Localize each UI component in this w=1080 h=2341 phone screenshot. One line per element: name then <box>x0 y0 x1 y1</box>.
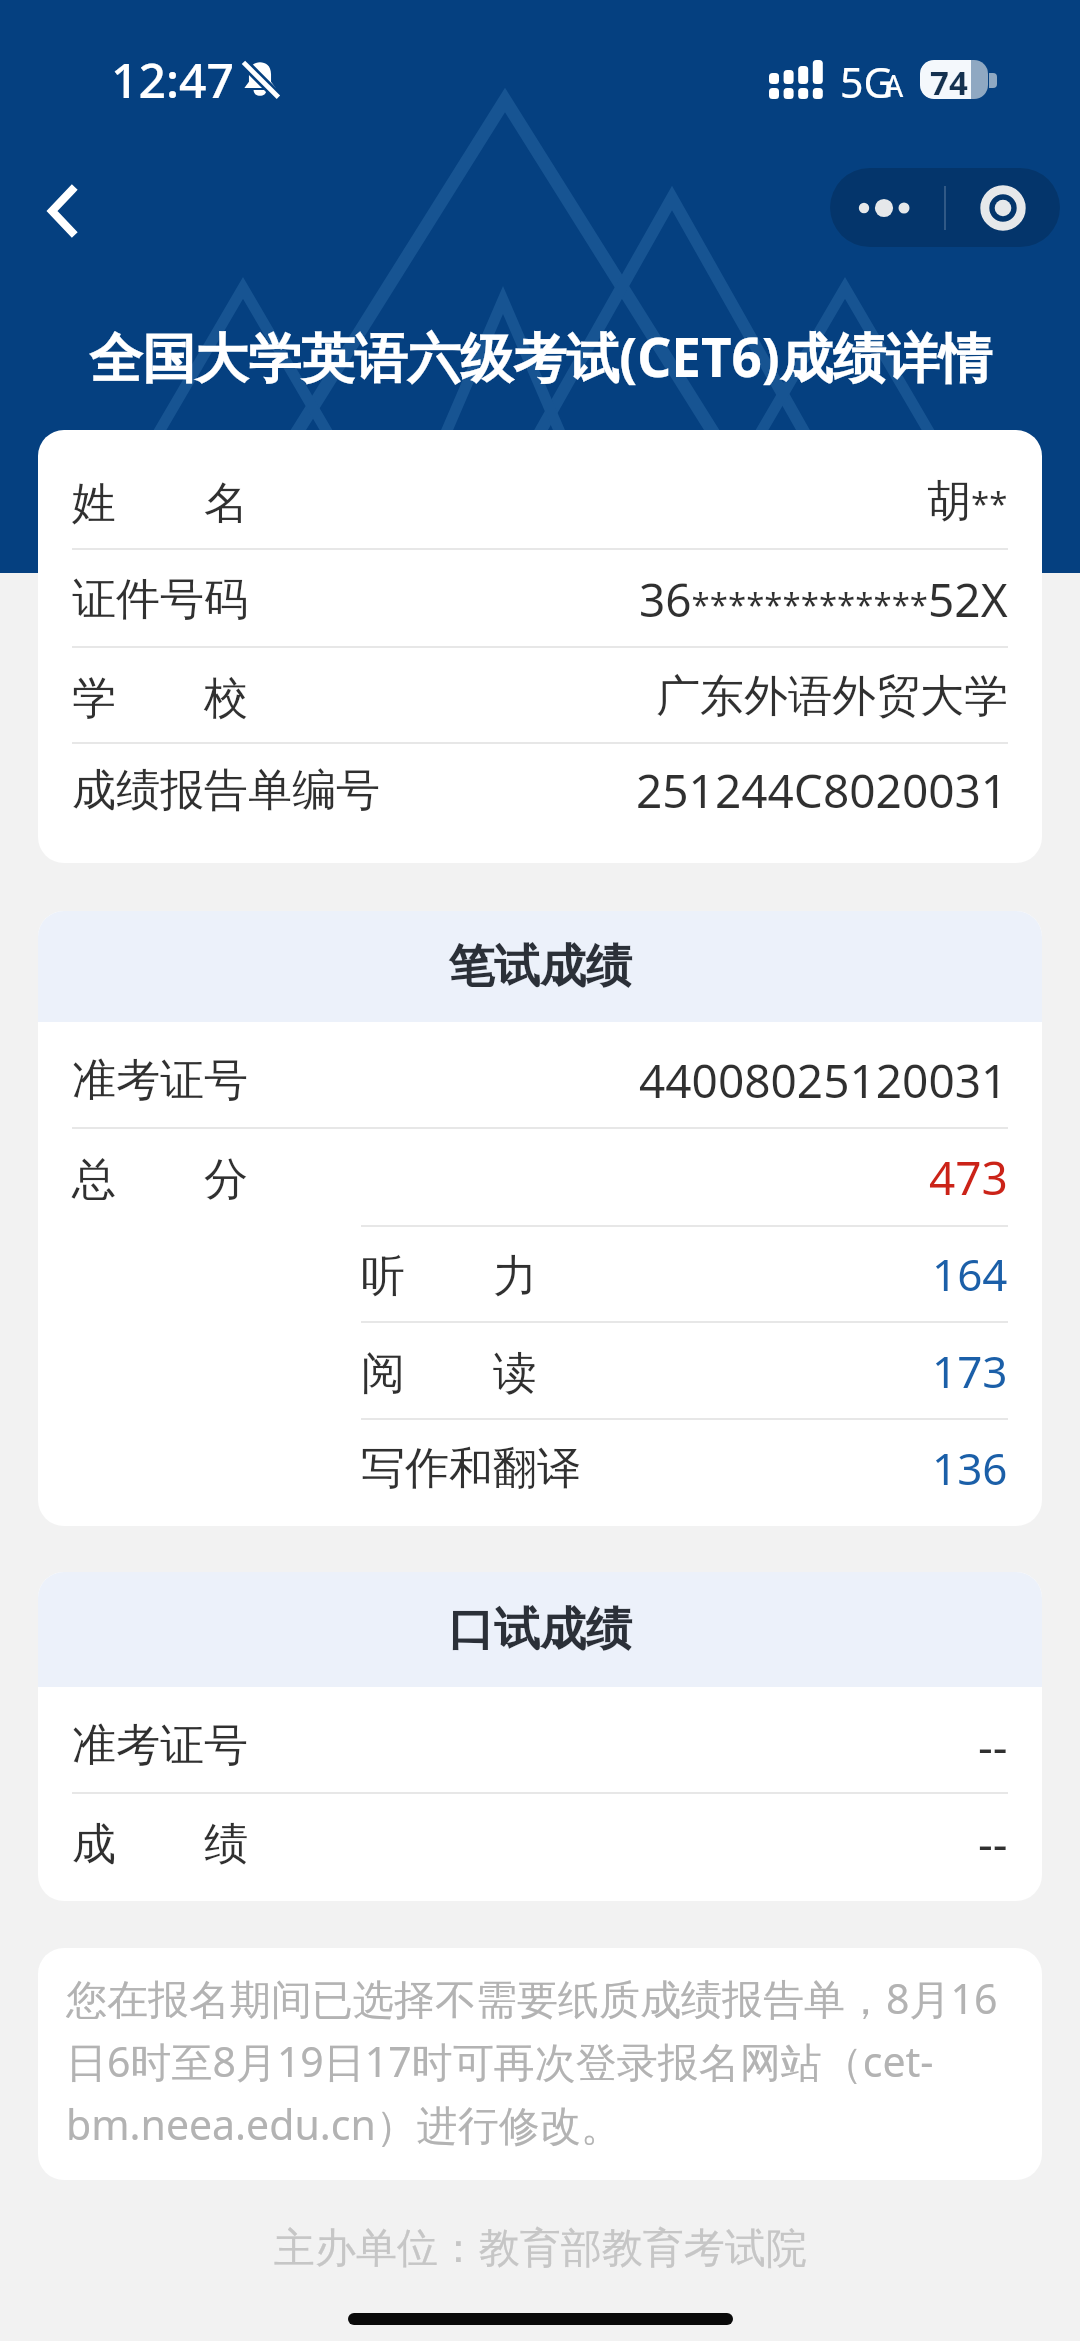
button[interactable]: 学 校 <box>38 648 1042 744</box>
button[interactable]: 成绩报告单编号 <box>38 743 1042 837</box>
button[interactable]: Back <box>17 166 107 256</box>
button[interactable]: 阅 读 <box>38 1323 1042 1419</box>
staticText: 听 力 <box>361 1244 537 1304</box>
button[interactable]: 写作和翻译 <box>38 1419 1042 1517</box>
staticText: 74 <box>930 60 968 99</box>
staticText: -- <box>978 1714 1008 1777</box>
staticText: 口试成绩 <box>448 1601 632 1659</box>
staticText: A <box>884 65 904 106</box>
staticText: 136 <box>932 1438 1008 1498</box>
staticText: 173 <box>932 1341 1008 1401</box>
staticText: 全国大学英语六级考试(CET6)成绩详情 <box>89 320 992 392</box>
staticText: 164 <box>932 1244 1008 1304</box>
staticText: 姓 名 <box>72 471 248 531</box>
staticText: 251244C8020031 <box>636 759 1008 822</box>
staticText: 主办单位：教育部教育考试院 <box>274 2223 807 2275</box>
staticText: 成绩报告单编号 <box>72 763 380 818</box>
button[interactable]: 证件号码 <box>38 551 1042 647</box>
staticText: 笔试成绩 <box>448 938 632 996</box>
staticText: 5G <box>840 54 894 110</box>
staticText: 成 绩 <box>72 1812 248 1872</box>
button[interactable]: 姓 名 <box>38 453 1042 549</box>
button[interactable]: Close mini program <box>946 168 1060 247</box>
staticText: 36*************52X <box>639 568 1008 631</box>
staticText: 胡** <box>927 474 1008 529</box>
staticText: 广东外语外贸大学 <box>656 669 1008 724</box>
staticText: 写作和翻译 <box>361 1441 581 1496</box>
staticText: -- <box>978 1811 1008 1874</box>
staticText: 473 <box>929 1146 1008 1209</box>
button[interactable]: 成 绩 <box>38 1794 1042 1890</box>
staticText: 学 校 <box>72 666 248 726</box>
staticText: 44008025120031 <box>639 1049 1008 1112</box>
staticText: 您在报名期间已选择不需要纸质成绩报告单，8月16日6时至8月19日17时可再次登… <box>66 1970 1012 2152</box>
staticText: 12:47 <box>111 47 234 112</box>
staticText: 准考证号 <box>72 1053 248 1108</box>
button[interactable]: 准考证号 <box>38 1032 1042 1128</box>
staticText: 阅 读 <box>361 1341 537 1401</box>
button[interactable]: 总 分 <box>38 1129 1042 1225</box>
staticText: 准考证号 <box>72 1718 248 1773</box>
button[interactable]: 听 力 <box>38 1226 1042 1322</box>
staticText: 证件号码 <box>72 572 248 627</box>
button[interactable]: More options <box>830 168 944 247</box>
button[interactable]: 准考证号 <box>38 1697 1042 1793</box>
staticText: 总 分 <box>72 1147 248 1207</box>
